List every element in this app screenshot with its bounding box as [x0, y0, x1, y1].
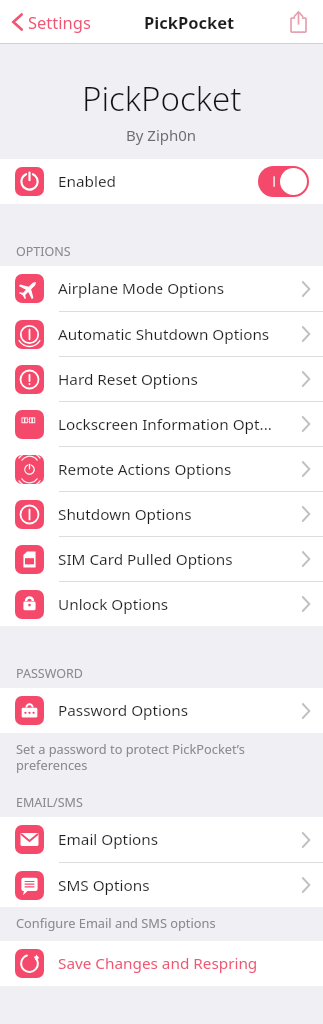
staticText: Airplane Mode Options [58, 278, 296, 299]
button[interactable]: Share [284, 5, 313, 39]
staticText: Unlock Options [58, 594, 296, 615]
staticText: SIM Card Pulled Options [58, 549, 296, 570]
button[interactable]: Remote Actions Options [0, 447, 323, 491]
button[interactable]: Lockscreen Information Opt... [0, 402, 323, 446]
button[interactable]: Enabled toggle [258, 166, 309, 197]
staticText: PickPocket [144, 11, 235, 33]
staticText: Automatic Shutdown Options [58, 324, 296, 345]
staticText: Configure Email and SMS options [16, 914, 216, 931]
button[interactable]: Save Changes and Respring [0, 941, 323, 986]
staticText: Save Changes and Respring [58, 953, 258, 974]
staticText: Set a password to protect PickPocket’s p… [16, 740, 245, 773]
staticText: Email Options [58, 829, 296, 850]
staticText: By Ziph0n [126, 125, 197, 145]
staticText: Shutdown Options [58, 504, 296, 525]
staticText: Lockscreen Information Opt... [58, 414, 296, 435]
staticText: PickPocket [82, 76, 242, 121]
staticText: EMAIL/SMS [16, 794, 83, 811]
button[interactable]: Enabled [0, 159, 323, 204]
button[interactable]: Settings [8, 5, 95, 39]
staticText: Enabled [58, 171, 258, 192]
staticText: OPTIONS [16, 243, 71, 260]
button[interactable]: SIM Card Pulled Options [0, 537, 323, 581]
button[interactable]: Shutdown Options [0, 492, 323, 536]
button[interactable]: Automatic Shutdown Options [0, 312, 323, 356]
staticText: SMS Options [58, 875, 296, 896]
button[interactable]: Unlock Options [0, 582, 323, 626]
button[interactable]: Hard Reset Options [0, 357, 323, 401]
button[interactable]: Password Options [0, 688, 323, 733]
button[interactable]: Email Options [0, 817, 323, 862]
button[interactable]: SMS Options [0, 863, 323, 907]
staticText: Settings [28, 11, 91, 33]
button[interactable]: Airplane Mode Options [0, 266, 323, 311]
staticText: Remote Actions Options [58, 459, 296, 480]
staticText: Password Options [58, 700, 296, 721]
staticText: Hard Reset Options [58, 369, 296, 390]
staticText: PASSWORD [16, 665, 83, 682]
